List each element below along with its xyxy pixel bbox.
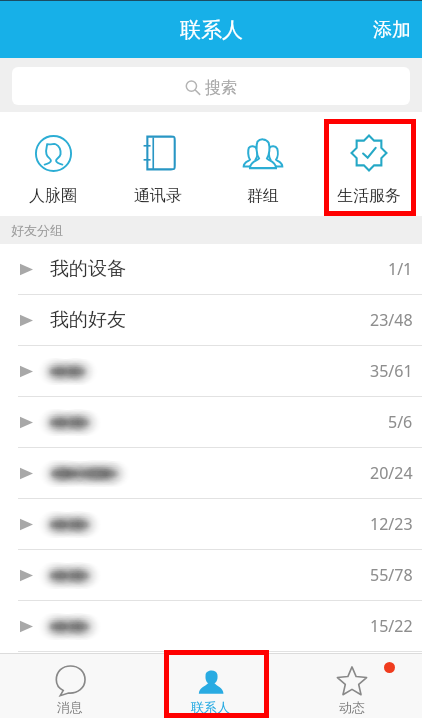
button[interactable]: 搜索 <box>12 67 410 105</box>
staticText: 消息 <box>57 699 83 715</box>
staticText: 我的好友 <box>50 308 126 332</box>
staticText: 添加 <box>373 18 411 42</box>
staticText: 5/6 <box>388 411 413 433</box>
staticText: 我的设备 <box>50 257 126 281</box>
button[interactable]: 我的设备 <box>0 244 422 294</box>
staticText: 1/1 <box>388 258 413 280</box>
button[interactable]: 12/23 <box>0 499 422 549</box>
staticText: 23/48 <box>370 309 413 331</box>
button[interactable]: 消息 <box>0 654 140 718</box>
button[interactable]: 生活服务 <box>316 112 422 206</box>
button[interactable]: 我的好友 <box>0 295 422 345</box>
staticText: 搜索 <box>205 78 237 98</box>
button[interactable]: 添加 <box>357 8 422 52</box>
button[interactable]: 动态 <box>281 654 422 718</box>
button[interactable]: 人脉圈 <box>0 112 105 206</box>
button[interactable]: 20/24 <box>0 448 422 498</box>
button[interactable]: 55/78 <box>0 550 422 600</box>
button[interactable]: 群组 <box>210 112 316 206</box>
button[interactable]: 通讯录 <box>105 112 210 206</box>
button[interactable]: 35/61 <box>0 346 422 396</box>
staticText: 人脉圈 <box>29 186 77 206</box>
staticText: 15/22 <box>370 615 413 637</box>
staticText: 动态 <box>339 699 365 715</box>
button[interactable]: 15/22 <box>0 601 422 651</box>
staticText: 好友分组 <box>11 222 63 238</box>
staticText: 联系人 <box>180 17 243 43</box>
staticText: 20/24 <box>370 462 413 484</box>
staticText: 通讯录 <box>134 186 182 206</box>
staticText: 生活服务 <box>337 186 401 206</box>
staticText: 35/61 <box>370 360 413 382</box>
button[interactable]: 联系人 <box>140 654 281 718</box>
button[interactable]: 5/6 <box>0 397 422 447</box>
staticText: 联系人 <box>191 699 230 715</box>
staticText: 55/78 <box>370 564 413 586</box>
staticText: 群组 <box>247 186 279 206</box>
staticText: 12/23 <box>370 513 413 535</box>
